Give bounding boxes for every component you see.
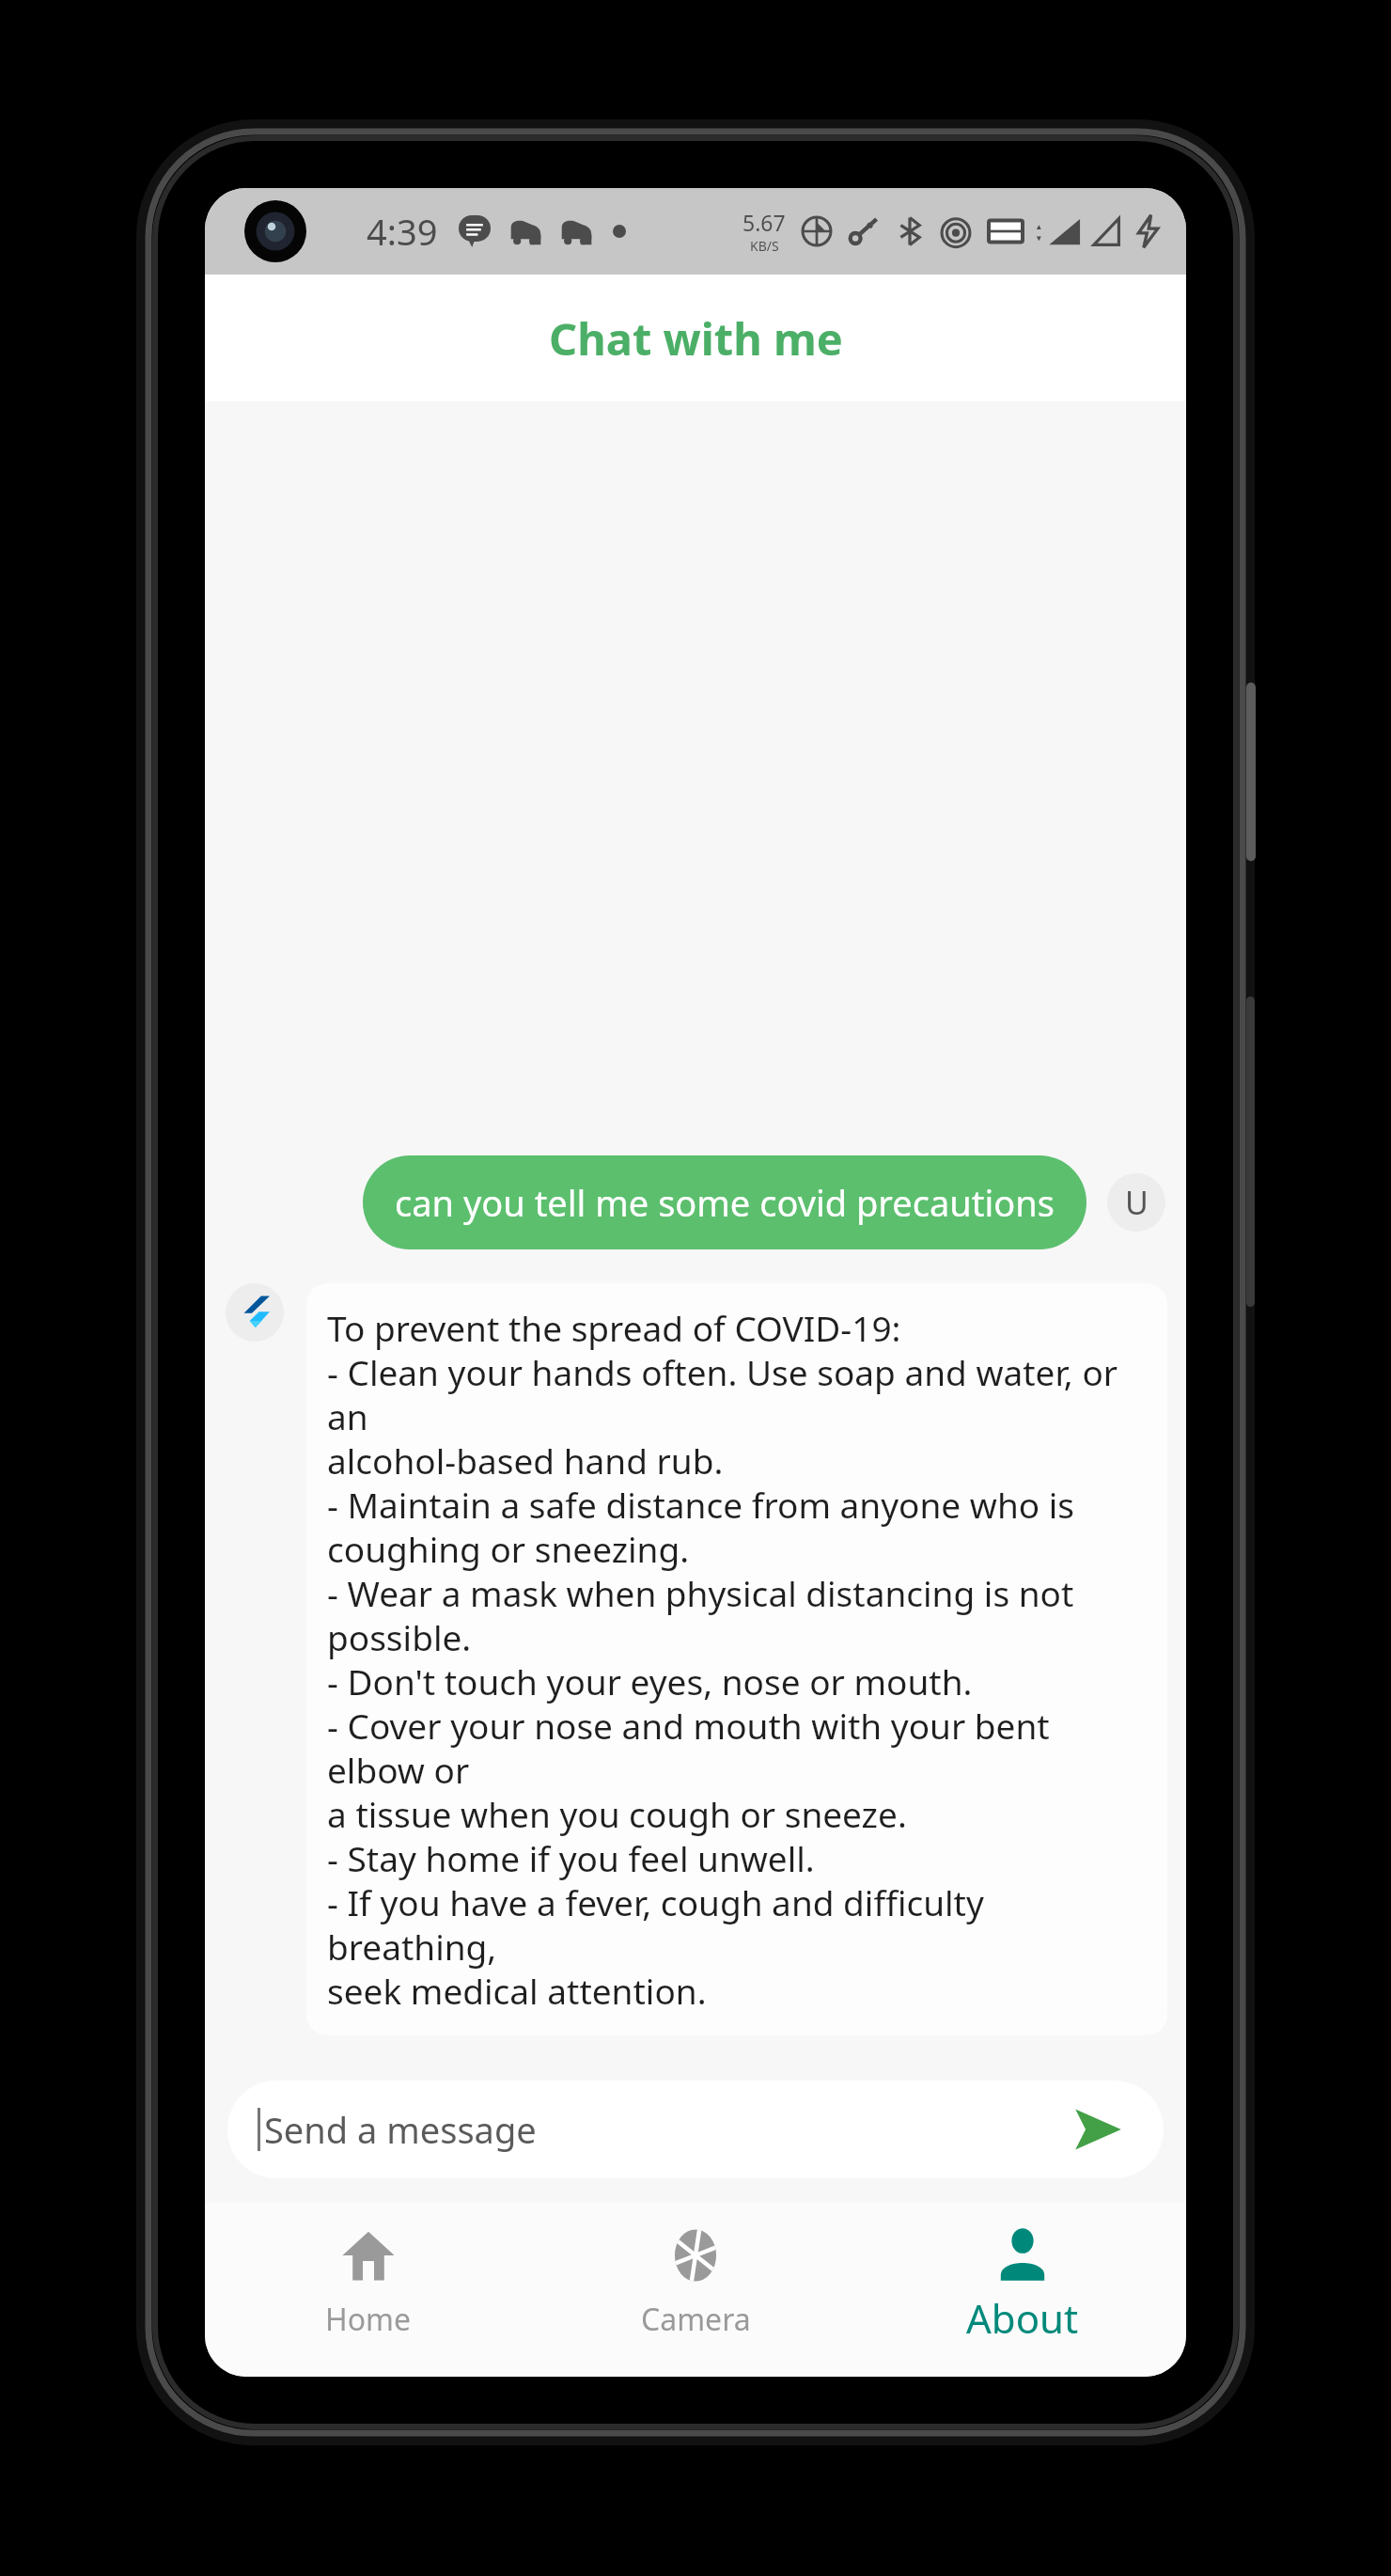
staticText: 5.67 xyxy=(742,208,786,237)
staticText: Send a message xyxy=(264,2105,537,2154)
button[interactable]: Send xyxy=(1062,2094,1133,2165)
staticText: U xyxy=(1125,1181,1149,1224)
staticText: 4:39 xyxy=(367,207,438,256)
button[interactable]: can you tell me some covid precautions xyxy=(363,1155,1086,1249)
staticText: To prevent the spread of COVID-19: - Cle… xyxy=(327,1304,1147,2015)
button[interactable]: Send a message xyxy=(227,2081,1164,2178)
button[interactable]: Camera xyxy=(532,2203,859,2377)
staticText: Camera xyxy=(641,2299,751,2340)
staticText: KB/S xyxy=(750,237,779,255)
staticText: About xyxy=(966,2291,1079,2345)
staticText: Home xyxy=(325,2299,412,2340)
button[interactable]: To prevent the spread of COVID-19: - Cle… xyxy=(306,1283,1167,2035)
button[interactable]: About xyxy=(859,2203,1186,2377)
staticText: can you tell me some covid precautions xyxy=(395,1178,1055,1227)
staticText: Chat with me xyxy=(549,308,843,369)
button[interactable]: Home xyxy=(205,2203,532,2377)
